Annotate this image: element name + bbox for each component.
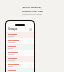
button[interactable]: [6, 32, 34, 38]
staticText: Better together,: [22, 5, 42, 8]
staticText: organize your crew: [22, 10, 43, 13]
button[interactable]: [6, 68, 34, 72]
staticText: Groups: [8, 27, 18, 31]
button[interactable]: [6, 56, 34, 62]
button[interactable]: [6, 62, 34, 68]
button[interactable]: [6, 50, 34, 56]
staticText: Shared lists for circles: [22, 13, 42, 16]
button[interactable]: [6, 44, 34, 50]
button[interactable]: Profile: [29, 28, 32, 31]
button[interactable]: [6, 38, 34, 44]
